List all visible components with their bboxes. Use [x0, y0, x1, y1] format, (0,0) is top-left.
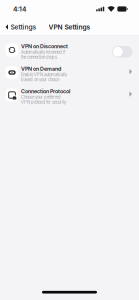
button[interactable]: VPN on Disconnect [0, 43, 139, 65]
staticText: VPN on Demand [21, 65, 61, 72]
button[interactable]: VPN on Demand [0, 65, 139, 88]
staticText: 4:14 [13, 5, 26, 13]
staticText: Settings [11, 23, 37, 31]
staticText: VPN on Disconnect [21, 43, 68, 49]
staticText: VPN Settings [48, 23, 90, 31]
staticText: Enable VPN automatically based on your c… [21, 72, 67, 82]
staticText: Connection Protocol [21, 88, 70, 94]
staticText: Automatically reconnect if the connectio… [21, 50, 66, 60]
button[interactable]: Connection Protocol [0, 88, 139, 110]
button[interactable]: Settings [0, 20, 41, 34]
staticText: Choose your preferred VPN protocol for s… [21, 95, 66, 105]
